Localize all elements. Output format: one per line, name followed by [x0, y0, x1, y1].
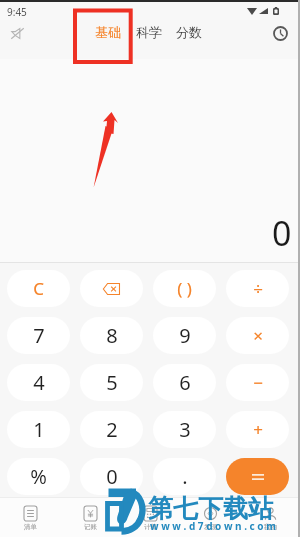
button[interactable]: ( ) — [153, 270, 216, 307]
staticText: − — [253, 371, 263, 394]
staticText: 0 — [272, 210, 292, 256]
staticText: 计算 — [144, 523, 157, 531]
staticText: 清单 — [24, 523, 37, 531]
staticText: C — [33, 277, 44, 300]
button[interactable]: 我的 — [240, 497, 300, 537]
button[interactable]: × — [226, 317, 289, 354]
staticText: 科学 — [136, 24, 162, 40]
staticText: 4 — [33, 369, 45, 396]
button[interactable]: 4 — [7, 364, 70, 401]
button[interactable]: 记账 — [60, 497, 120, 537]
staticText: 分数 — [176, 24, 202, 40]
button[interactable]: 基础 — [93, 19, 123, 45]
button[interactable]: 6 — [153, 364, 216, 401]
staticText: 基础 — [95, 24, 121, 40]
staticText: 发现 — [204, 523, 217, 531]
button[interactable]: − — [226, 364, 289, 401]
staticText: + — [253, 418, 263, 441]
button[interactable]: 8 — [80, 317, 143, 354]
button[interactable]: 科学 — [134, 19, 164, 45]
staticText: 1 — [33, 416, 45, 443]
button[interactable]: History — [267, 20, 293, 46]
button[interactable]: Mute — [4, 20, 30, 46]
staticText: ÷ — [253, 277, 263, 300]
button[interactable]: + — [226, 411, 289, 448]
button[interactable]: % — [7, 458, 70, 495]
staticText: 我的 — [264, 523, 277, 531]
button[interactable]: Equals — [226, 458, 289, 495]
staticText: 9:45 — [7, 5, 27, 19]
button[interactable]: 3 — [153, 411, 216, 448]
staticText: % — [30, 463, 47, 490]
staticText: 第七下载站 — [148, 493, 273, 524]
button[interactable]: C — [7, 270, 70, 307]
staticText: 7 — [33, 322, 45, 349]
button[interactable]: 9 — [153, 317, 216, 354]
button[interactable]: 计算 — [120, 497, 180, 537]
button[interactable]: Delete — [80, 270, 143, 307]
staticText: 0 — [106, 463, 118, 490]
staticText: 9 — [179, 322, 191, 349]
button[interactable]: 5 — [80, 364, 143, 401]
staticText: . — [182, 463, 188, 490]
staticText: ( ) — [177, 277, 192, 300]
button[interactable]: . — [153, 458, 216, 495]
button[interactable]: 发现 — [180, 497, 240, 537]
staticText: 记账 — [84, 523, 97, 531]
button[interactable]: 7 — [7, 317, 70, 354]
button[interactable]: 0 — [80, 458, 143, 495]
staticText: 8 — [106, 322, 118, 349]
button[interactable]: 清单 — [0, 497, 60, 537]
staticText: 5 — [106, 369, 118, 396]
staticText: 2 — [106, 416, 118, 443]
button[interactable]: 1 — [7, 411, 70, 448]
button[interactable]: ÷ — [226, 270, 289, 307]
staticText: × — [253, 324, 263, 347]
button[interactable]: 分数 — [174, 19, 204, 45]
button[interactable]: 2 — [80, 411, 143, 448]
staticText: w w w . d 7 d o w n . c o m — [150, 519, 276, 533]
staticText: 6 — [179, 369, 191, 396]
staticText: 3 — [179, 416, 191, 443]
